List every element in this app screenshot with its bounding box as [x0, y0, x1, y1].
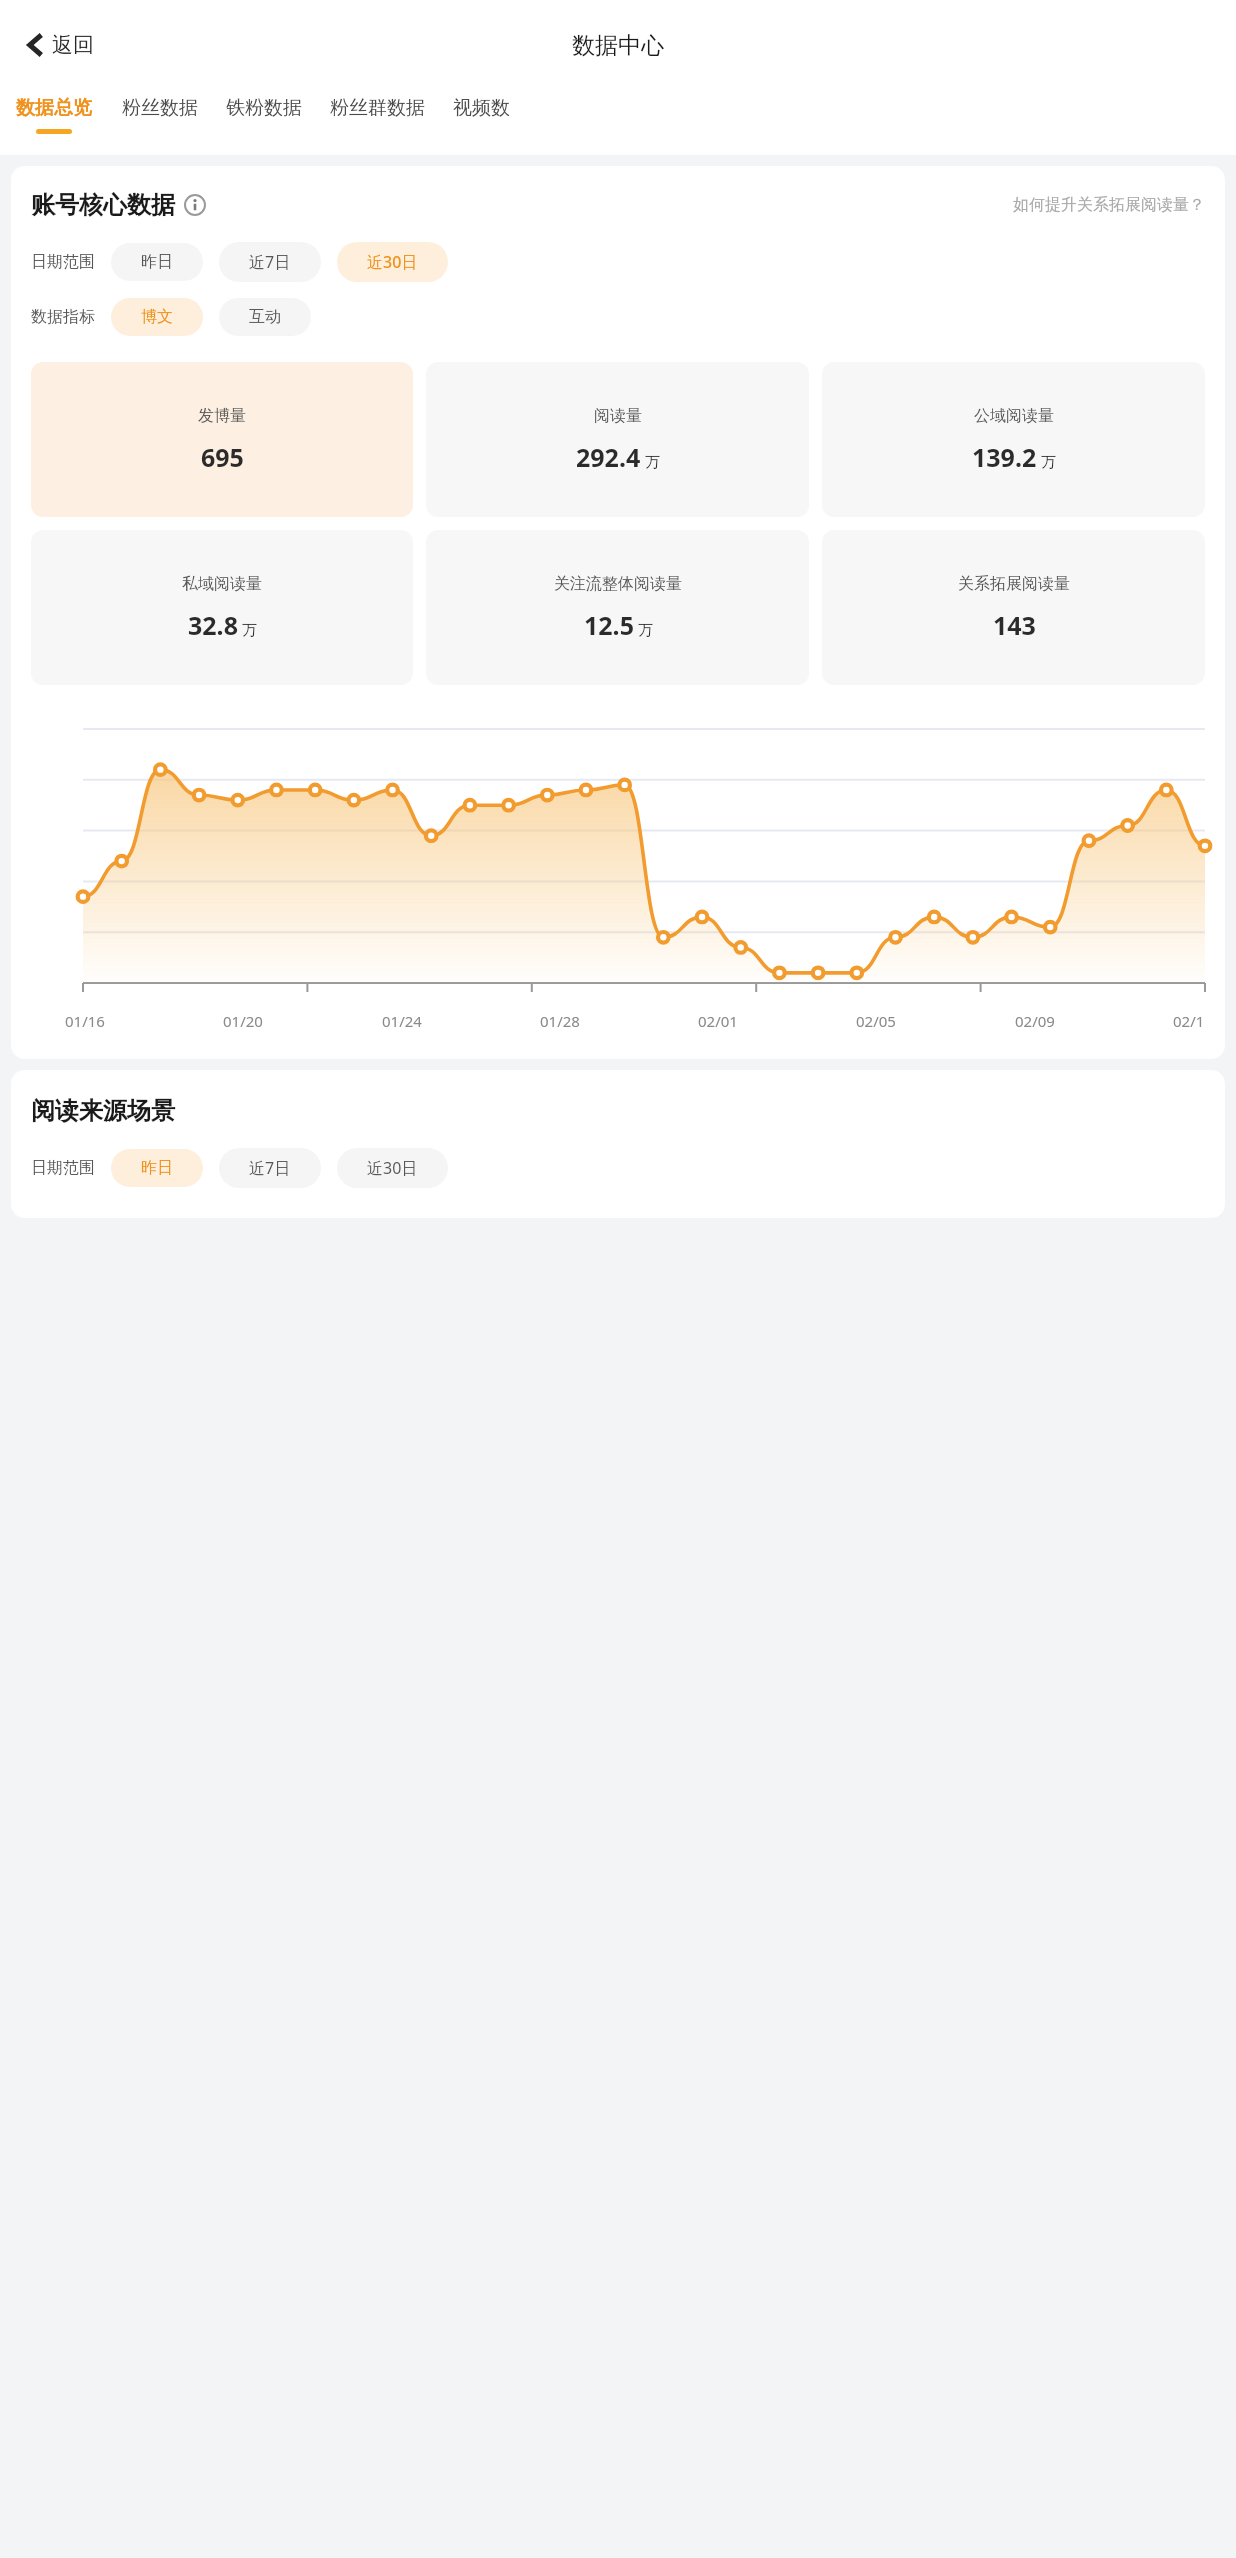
staticText: 粉丝群数据	[330, 96, 425, 120]
staticText: 695	[201, 440, 244, 474]
staticText: 万	[638, 621, 653, 640]
staticText: 01/28	[540, 1011, 580, 1031]
button[interactable]: 数据总览	[16, 90, 92, 134]
staticText: 日期范围	[31, 252, 95, 272]
staticText: 粉丝数据	[122, 96, 198, 120]
other: Back	[24, 34, 46, 56]
staticText: 02/1	[1173, 1011, 1205, 1031]
button[interactable]: 近7日	[219, 242, 321, 282]
staticText: 12.5	[584, 608, 634, 642]
button[interactable]: 粉丝群数据	[330, 90, 425, 129]
button[interactable]: 公域阅读量	[822, 362, 1205, 517]
button[interactable]: Back	[18, 26, 100, 64]
staticText: 博文	[141, 307, 173, 327]
staticText: 铁粉数据	[226, 96, 302, 120]
staticText: 292.4	[576, 440, 641, 474]
staticText: 近7日	[249, 1157, 291, 1179]
button[interactable]: 粉丝数据	[122, 90, 198, 129]
staticText: 日期范围	[31, 1158, 95, 1178]
button[interactable]: 近7日	[219, 1148, 321, 1188]
button[interactable]: 关注流整体阅读量	[426, 530, 809, 685]
staticText: 万	[1041, 453, 1056, 472]
staticText: 发博量	[198, 406, 246, 426]
staticText: 02/05	[856, 1011, 896, 1031]
staticText: 数据指标	[31, 307, 95, 327]
button[interactable]: 昨日	[111, 1149, 203, 1187]
staticText: 01/16	[65, 1011, 105, 1031]
staticText: 昨日	[141, 1158, 173, 1178]
staticText: 视频数	[453, 96, 510, 120]
button[interactable]: 视频数	[453, 90, 510, 129]
button[interactable]: 关系拓展阅读量	[822, 530, 1205, 685]
button[interactable]: 昨日	[111, 243, 203, 281]
staticText: 账号核心数据	[31, 190, 175, 220]
button[interactable]: 阅读量	[426, 362, 809, 517]
staticText: 阅读量	[594, 406, 642, 426]
staticText: 私域阅读量	[182, 574, 262, 594]
button[interactable]: 私域阅读量	[31, 530, 413, 685]
button[interactable]: 近30日	[337, 1148, 448, 1188]
staticText: 近30日	[367, 251, 418, 273]
staticText: 32.8	[188, 608, 238, 642]
staticText: 01/20	[223, 1011, 263, 1031]
button[interactable]: 如何提升关系拓展阅读量？	[1013, 195, 1205, 215]
staticText: 互动	[249, 307, 281, 327]
staticText: 02/09	[1015, 1011, 1055, 1031]
button[interactable]: Info	[184, 194, 206, 216]
staticText: 万	[242, 621, 257, 640]
staticText: 返回	[52, 32, 94, 58]
staticText: 02/01	[698, 1011, 738, 1031]
staticText: 数据总览	[16, 96, 92, 120]
staticText: 数据中心	[572, 31, 664, 60]
staticText: 139.2	[972, 440, 1037, 474]
button[interactable]: 发博量	[31, 362, 413, 517]
button[interactable]: 近30日	[337, 242, 448, 282]
staticText: 近30日	[367, 1157, 418, 1179]
button[interactable]: 互动	[219, 298, 311, 336]
staticText: 143	[993, 608, 1036, 642]
staticText: 01/24	[382, 1011, 422, 1031]
button[interactable]: 铁粉数据	[226, 90, 302, 129]
staticText: 关注流整体阅读量	[554, 574, 682, 594]
staticText: 关系拓展阅读量	[958, 574, 1070, 594]
staticText: 万	[645, 453, 660, 472]
staticText: 昨日	[141, 252, 173, 272]
staticText: 阅读来源场景	[31, 1096, 175, 1126]
staticText: 公域阅读量	[974, 406, 1054, 426]
button[interactable]: 博文	[111, 298, 203, 336]
staticText: 近7日	[249, 251, 291, 273]
